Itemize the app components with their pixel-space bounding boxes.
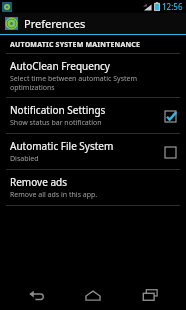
button[interactable]: Notification Settings: [0, 98, 186, 133]
staticText: 12:56: [162, 1, 183, 12]
staticText: AutoClean Frequency: [10, 59, 110, 73]
staticText: AUTOMATIC SYSTEM MAINTENANCE: [10, 40, 141, 50]
button[interactable]: AutoClean Frequency: [0, 54, 186, 97]
staticText: Remove ads: [10, 175, 67, 189]
button[interactable]: Preferences: [0, 13, 186, 34]
staticText: Notification Settings: [10, 103, 106, 117]
staticText: Automatic File System Maintenance: [10, 139, 154, 153]
button[interactable]: Back: [17, 280, 57, 310]
button[interactable]: Unchecked: [160, 142, 180, 162]
staticText: Show status bar notification: [10, 118, 102, 128]
staticText: Select time between automatic System opt…: [10, 74, 180, 92]
staticText: Disabled: [10, 154, 39, 164]
button[interactable]: Recent apps: [130, 280, 170, 310]
button[interactable]: Home: [73, 280, 113, 310]
button[interactable]: Checked: [160, 106, 180, 126]
staticText: Preferences: [24, 16, 86, 31]
staticText: Remove all ads in this app.: [10, 190, 98, 200]
button[interactable]: Remove ads: [0, 170, 186, 205]
button[interactable]: Automatic File System Maintenance: [0, 134, 186, 169]
